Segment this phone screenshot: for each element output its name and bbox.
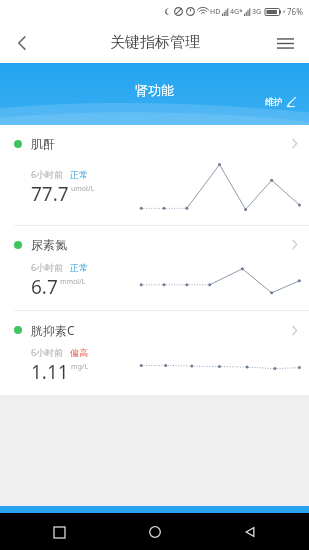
button[interactable]: 维护 [261, 92, 301, 111]
staticText: 76% [287, 6, 303, 17]
staticText: 1.11 [31, 359, 69, 385]
staticText: 正常 [70, 262, 88, 273]
staticText: 关键指标管理 [110, 33, 200, 52]
staticText: 3G [252, 7, 262, 17]
staticText: HD [210, 7, 221, 17]
button[interactable]: Home [142, 519, 168, 545]
staticText: 胱抑素C [31, 322, 75, 338]
staticText: mg/L [71, 362, 89, 372]
button[interactable]: Back [237, 519, 263, 545]
staticText: ⚡ [282, 8, 287, 15]
button[interactable]: 肌酐 [0, 125, 309, 225]
staticText: 尿素氮 [31, 237, 67, 252]
staticText: mmol/L [60, 277, 86, 287]
staticText: 肌酐 [31, 136, 55, 151]
staticText: 6小时前 [31, 261, 64, 273]
staticText: 77.7 [31, 181, 69, 207]
staticText: 6小时前 [31, 168, 64, 180]
button[interactable]: 尿素氮 [0, 226, 309, 310]
staticText: 4G* [230, 7, 243, 17]
staticText: 6小时前 [31, 346, 64, 358]
button[interactable]: Menu [267, 25, 303, 61]
button[interactable]: Back [4, 25, 40, 61]
button[interactable]: 胱抑素C [0, 311, 309, 395]
staticText: 正常 [70, 169, 88, 180]
staticText: 偏高 [70, 347, 88, 358]
staticText: 6.7 [31, 274, 58, 300]
button[interactable]: Recents [46, 519, 72, 545]
staticText: 维护 [265, 96, 283, 107]
staticText: umol/L [71, 184, 95, 194]
staticText: 肾功能 [135, 82, 174, 98]
